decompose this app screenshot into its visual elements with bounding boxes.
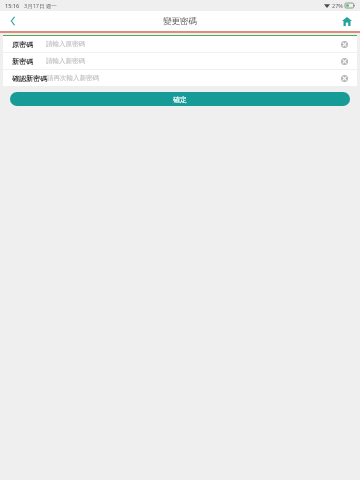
staticText: 變更密碼	[163, 16, 197, 27]
button[interactable]: 原密碼	[3, 36, 357, 52]
button[interactable]: Clear	[337, 54, 351, 68]
staticText: 新密碼	[12, 57, 46, 66]
staticText: 確定	[173, 95, 187, 104]
staticText: 15:16	[5, 2, 20, 9]
button[interactable]: Back	[0, 11, 26, 31]
button[interactable]: 新密碼	[3, 53, 357, 69]
button[interactable]: Clear	[337, 37, 351, 51]
button[interactable]: Clear	[337, 71, 351, 85]
staticText: 27%	[332, 2, 343, 9]
staticText: 原密碼	[12, 40, 46, 49]
button[interactable]: Home	[334, 11, 360, 31]
staticText: 3月17日 週一	[24, 2, 57, 10]
staticText: 請輸入原密碼	[46, 40, 337, 48]
button[interactable]: 確認新密碼	[3, 70, 357, 86]
staticText: 確認新密碼	[12, 74, 47, 83]
staticText: 請再次輸入新密碼	[47, 74, 337, 82]
staticText: 請輸入新密碼	[46, 57, 337, 65]
button[interactable]: 確定	[10, 92, 350, 106]
